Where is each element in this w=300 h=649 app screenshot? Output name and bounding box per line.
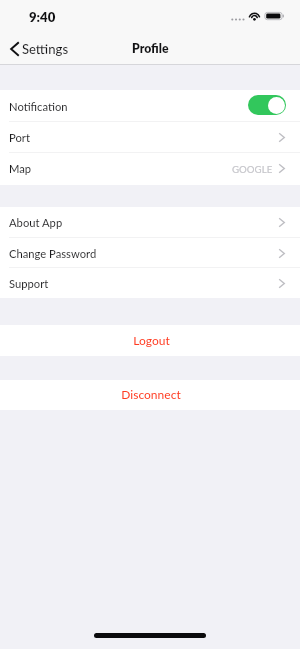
other: Open [279,133,285,142]
other: Open [279,164,285,173]
staticText: Support [9,277,49,290]
staticText: Map [9,162,32,175]
button[interactable]: Settings [0,36,79,62]
other: Open [279,279,285,288]
button[interactable]: About App [0,207,300,238]
button[interactable]: Change Password [0,238,300,268]
staticText: Logout [133,333,170,347]
staticText: Disconnect [121,387,181,401]
button[interactable]: Map [0,153,300,184]
button[interactable]: Disconnect [0,380,300,410]
other: Open [279,249,285,258]
staticText: 9:40 [29,9,56,25]
staticText: Profile [132,41,169,56]
button[interactable]: Support [0,268,300,298]
staticText: Port [9,131,30,144]
button[interactable]: Logout [0,325,300,356]
button[interactable]: Notification [0,90,300,123]
staticText: About App [9,216,63,229]
button[interactable]: Notification toggle [248,95,286,115]
staticText: Settings [22,41,69,57]
staticText: GOOGLE [232,163,273,175]
staticText: Notification [9,100,68,113]
staticText: Change Password [9,247,97,260]
button[interactable]: Port [0,122,300,153]
other: Open [279,218,285,227]
